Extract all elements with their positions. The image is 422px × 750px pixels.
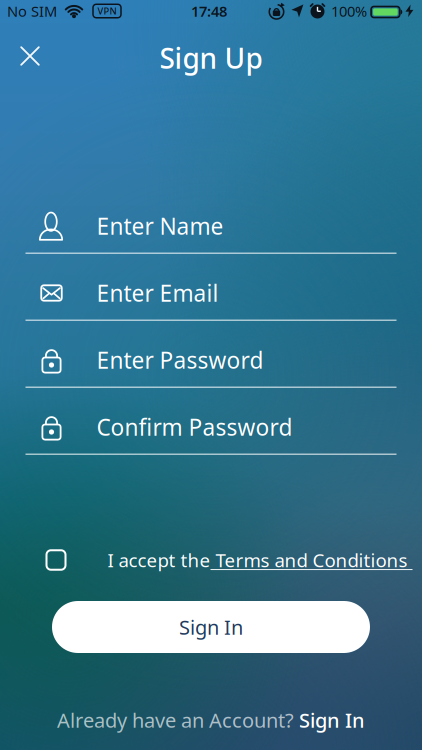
staticText: Terms and Conditions <box>210 548 412 572</box>
staticText: Already have an Account? <box>57 707 299 733</box>
button[interactable]: Accept Terms <box>46 550 65 570</box>
button[interactable]: Confirm Password <box>25 388 396 455</box>
staticText: Enter Password <box>96 345 263 375</box>
button[interactable]: Enter Name <box>25 187 396 254</box>
staticText: I accept the <box>107 548 210 572</box>
staticText: Confirm Password <box>96 412 292 442</box>
button[interactable]: Enter Email <box>25 254 396 321</box>
button[interactable]: Close <box>10 36 50 76</box>
staticText: 17:48 <box>191 1 227 21</box>
staticText: VPN <box>97 5 116 17</box>
staticText: Sign In <box>299 707 365 733</box>
staticText: Sign In <box>179 614 243 640</box>
staticText: No SIM <box>7 1 57 21</box>
staticText: 100% <box>331 1 367 21</box>
staticText: Sign Up <box>159 39 262 77</box>
button[interactable]: Terms and Conditions <box>210 548 412 572</box>
button[interactable]: Sign In <box>52 601 370 653</box>
staticText: Enter Email <box>96 278 218 308</box>
button[interactable]: Sign In <box>299 707 365 733</box>
staticText: Enter Name <box>96 211 223 241</box>
button[interactable]: Enter Password <box>25 321 396 388</box>
